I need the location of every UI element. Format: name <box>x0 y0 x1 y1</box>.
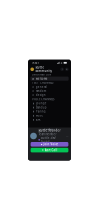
staticText: ◖ <box>33 110 34 113</box>
button[interactable]: ◖ <box>30 109 69 113</box>
staticText: ◖ <box>33 102 34 105</box>
staticText: # <box>32 89 34 93</box>
staticText: ◖ <box>33 106 34 109</box>
staticText: ⌕ <box>62 68 63 71</box>
button[interactable]: ◖ <box>30 118 69 122</box>
button[interactable]: ◖ <box>30 105 69 109</box>
button[interactable]: ◖ <box>30 101 69 105</box>
staticText: # <box>32 77 34 80</box>
staticText: Lounge <box>36 101 47 105</box>
staticText: Team member <box>38 132 56 136</box>
button[interactable]: ◖ <box>30 113 69 118</box>
staticText: general <box>36 85 47 89</box>
staticText: ▶ <box>40 143 42 146</box>
staticText: + <box>66 67 68 71</box>
staticText: INFORMATION <box>32 73 51 76</box>
staticText: ◖ <box>33 114 34 117</box>
staticText: ✆ <box>41 149 43 152</box>
button[interactable]: # <box>30 77 69 81</box>
staticText: # <box>32 93 34 97</box>
button[interactable]: Add <box>65 67 69 71</box>
button[interactable]: # <box>30 85 69 89</box>
staticText: design <box>36 93 46 97</box>
staticText: ⋯ <box>66 134 69 137</box>
button[interactable]: ✆ <box>31 148 68 152</box>
staticText: random <box>36 89 46 93</box>
staticText: Join Voice <box>43 142 58 146</box>
staticText: Pairing <box>36 110 46 113</box>
staticText: welcome <box>36 77 48 80</box>
staticText: VOICE CHANNELS <box>32 97 54 101</box>
staticText: # <box>32 85 34 89</box>
staticText: ◖ <box>33 118 34 121</box>
staticText: scuttle community <box>35 66 51 73</box>
button[interactable]: Search <box>60 68 64 71</box>
staticText: scuttle_founder <box>38 129 60 132</box>
button[interactable]: More <box>66 134 69 137</box>
staticText: Music <box>36 114 43 117</box>
staticText: Standup <box>36 106 47 109</box>
button[interactable]: # <box>30 89 69 93</box>
staticText: scuttle.dev/found <box>41 136 56 143</box>
staticText: Start Call <box>44 148 57 152</box>
staticText: 9:41 <box>32 61 39 64</box>
button[interactable]: # <box>30 93 69 97</box>
staticText: TEXT CHANNELS <box>32 81 53 84</box>
staticText: AFK <box>36 118 41 121</box>
button[interactable]: ▶ <box>31 142 68 147</box>
